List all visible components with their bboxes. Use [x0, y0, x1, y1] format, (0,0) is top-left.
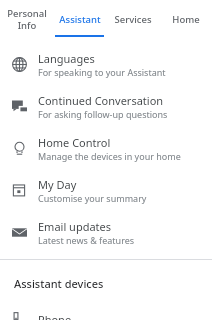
button[interactable]: Email updates [0, 211, 212, 253]
staticText: For speaking to your Assistant [38, 66, 166, 78]
button[interactable]: Home Control [0, 127, 212, 169]
staticText: Languages [38, 51, 95, 66]
staticText: For asking follow-up questions [38, 108, 168, 120]
staticText: Continued Conversation [38, 93, 164, 108]
button[interactable]: Phone [0, 312, 212, 320]
staticText: My Day [38, 177, 77, 192]
staticText: Customise your summary [38, 192, 147, 204]
staticText: Assistant devices [14, 276, 104, 291]
staticText: Latest news & features [38, 234, 135, 246]
staticText: Assistant [59, 13, 101, 26]
button[interactable]: Assistant [53, 0, 106, 38]
button[interactable]: Personal Info [0, 0, 53, 38]
button[interactable]: Continued Conversation [0, 85, 212, 127]
staticText: Email updates [38, 219, 112, 234]
button[interactable]: My Day [0, 169, 212, 211]
staticText: Manage the devices in your home [38, 150, 181, 162]
staticText: Services [114, 13, 152, 26]
staticText: Home Control [38, 135, 111, 150]
button[interactable]: Languages [0, 43, 212, 85]
staticText: Personal Info [7, 7, 47, 31]
button[interactable]: Home [159, 0, 212, 38]
staticText: Phone [38, 312, 72, 320]
staticText: Home [172, 13, 200, 26]
button[interactable]: Services [106, 0, 159, 38]
